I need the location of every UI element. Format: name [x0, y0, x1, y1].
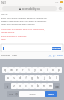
staticText: o: [52, 68, 54, 72]
staticText: Enter your email address below to receiv…: [1, 17, 51, 26]
staticText: z: [13, 84, 15, 88]
button[interactable]: o: [50, 67, 56, 73]
button[interactable]: ⌫: [53, 83, 60, 89]
staticText: u: [40, 68, 42, 72]
staticText: w: [10, 68, 13, 72]
staticText: Sign up: [1, 13, 8, 15]
button[interactable]: f: [23, 75, 29, 81]
button[interactable]: h: [35, 75, 41, 81]
button[interactable]: space: [19, 91, 45, 97]
staticText: There was a problem with your submission…: [1, 28, 49, 34]
button[interactable]: m: [47, 83, 53, 89]
button[interactable]: b: [35, 83, 41, 89]
staticText: i: [47, 68, 48, 72]
button[interactable]: u: [38, 67, 44, 73]
button[interactable]: Page settings: [57, 4, 64, 12]
button[interactable]: q: [2, 67, 8, 73]
staticText: r: [22, 68, 24, 72]
staticText: Email address is required here.: [1, 35, 31, 41]
button[interactable]: ⇧: [4, 83, 11, 89]
button[interactable]: j: [41, 75, 47, 81]
button[interactable]: l: [53, 75, 59, 81]
staticText: q: [4, 68, 6, 72]
staticText: b: [37, 84, 39, 88]
button[interactable]: a: [5, 75, 11, 81]
button[interactable]: Subscribe: [52, 47, 61, 50]
button[interactable]: Previous Next: [1, 54, 18, 57]
staticText: g: [31, 76, 33, 80]
button[interactable]: k: [47, 75, 53, 81]
button[interactable]: w: [8, 67, 14, 73]
button[interactable]: r: [20, 67, 26, 73]
staticText: space: [29, 93, 36, 96]
staticText: y: [34, 68, 36, 72]
button[interactable]: ☺: [14, 91, 19, 97]
button[interactable]: z: [11, 83, 17, 89]
button[interactable]: x: [17, 83, 23, 89]
button[interactable]: y: [32, 67, 38, 73]
staticText: ☺: [15, 93, 18, 96]
staticText: x: [19, 84, 21, 88]
button[interactable]: v: [29, 83, 35, 89]
staticText: s: [13, 76, 15, 80]
staticText: n: [43, 84, 45, 88]
staticText: ••••: [55, 1, 59, 4]
button[interactable]: e: [14, 67, 20, 73]
button[interactable]: 123: [7, 91, 14, 97]
staticText: c: [25, 84, 27, 88]
staticText: j: [44, 76, 45, 80]
staticText: e: [16, 68, 18, 72]
staticText: Send: [48, 93, 54, 96]
button[interactable]: accessibility.ca: [2, 6, 57, 11]
button[interactable]: g: [29, 75, 35, 81]
staticText: ⇧: [6, 85, 9, 88]
staticText: k: [49, 76, 51, 80]
staticText: d: [19, 76, 21, 80]
button[interactable]: c: [23, 83, 29, 89]
staticText: ⌫: [55, 85, 59, 88]
button[interactable]: Next field: [52, 54, 56, 58]
button[interactable]: Send: [45, 91, 57, 97]
button[interactable]: n: [41, 83, 47, 89]
button[interactable]: Done: [57, 54, 63, 57]
button[interactable]: Previous field: [48, 54, 52, 58]
button[interactable]: t: [26, 67, 32, 73]
staticText: a: [7, 76, 9, 80]
staticText: accessibility.ca: [22, 7, 40, 11]
staticText: Subscribe: [52, 47, 61, 50]
staticText: t: [28, 68, 30, 72]
staticText: Done: [57, 54, 63, 57]
staticText: 9:41: [1, 1, 6, 4]
button[interactable]: i: [44, 67, 50, 73]
staticText: h: [37, 76, 39, 80]
staticText: f: [25, 76, 27, 80]
button[interactable]: s: [11, 75, 17, 81]
staticText: v: [31, 84, 33, 88]
staticText: l: [56, 76, 57, 80]
staticText: m: [49, 84, 52, 88]
staticText: 123: [9, 93, 13, 96]
staticText: p: [58, 68, 60, 72]
button[interactable]: p: [56, 67, 62, 73]
button[interactable]: d: [17, 75, 23, 81]
